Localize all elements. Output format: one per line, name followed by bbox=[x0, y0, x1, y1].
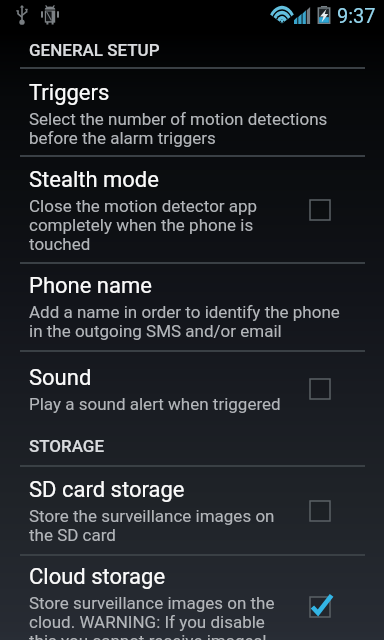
staticText: Store the surveillance images on the SD … bbox=[29, 506, 275, 545]
button[interactable]: SD card storage bbox=[303, 494, 337, 528]
staticText: Triggers bbox=[29, 80, 110, 106]
staticText: Close the motion detector app completely… bbox=[29, 196, 258, 254]
staticText: Select the number of motion detections b… bbox=[29, 109, 328, 148]
staticText: Play a sound alert when triggered bbox=[29, 394, 281, 414]
staticText: STORAGE bbox=[29, 436, 105, 456]
button[interactable]: Stealth mode bbox=[303, 193, 337, 227]
staticText: Store surveillance images on the cloud. … bbox=[29, 593, 275, 640]
staticText: 9:37 bbox=[337, 4, 376, 27]
button[interactable]: Stealth mode bbox=[0, 157, 384, 262]
staticText: Add a name in order to identify the phon… bbox=[29, 302, 340, 341]
button[interactable]: SD card storage bbox=[0, 467, 384, 554]
staticText: GENERAL SETUP bbox=[29, 40, 160, 60]
staticText: Cloud storage bbox=[29, 564, 166, 590]
button[interactable]: Sound bbox=[303, 372, 337, 406]
button[interactable]: Cloud storage bbox=[0, 556, 384, 640]
button[interactable]: Cloud storage bbox=[303, 590, 337, 624]
button[interactable]: Sound bbox=[0, 352, 384, 425]
staticText: Stealth mode bbox=[29, 167, 159, 193]
staticText: Sound bbox=[29, 365, 92, 391]
staticText: Phone name bbox=[29, 273, 152, 299]
staticText: SD card storage bbox=[29, 477, 185, 503]
button[interactable]: Phone name bbox=[0, 264, 384, 350]
button[interactable]: Triggers bbox=[0, 69, 384, 155]
